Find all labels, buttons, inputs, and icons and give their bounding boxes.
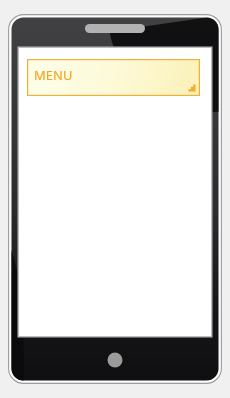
button[interactable]: Home bbox=[107, 352, 123, 368]
staticText: MENU bbox=[34, 66, 73, 84]
button[interactable]: MENU bbox=[27, 59, 200, 96]
